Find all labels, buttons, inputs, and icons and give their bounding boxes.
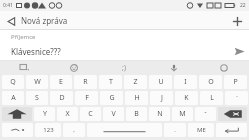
staticText: Nová zpráva [21,15,68,26]
staticText: 123 [43,126,54,134]
button[interactable]: Send [229,44,249,58]
staticText: I [184,77,187,87]
button[interactable]: C [80,107,101,121]
staticText: D [59,93,65,103]
staticText: A [11,93,16,103]
button[interactable]: circle [199,61,249,74]
staticText: B [134,109,139,119]
button[interactable]: J [150,91,173,105]
button[interactable]: X [57,107,78,121]
button[interactable]: Space [87,123,162,137]
button[interactable]: Shift [2,107,32,121]
button[interactable]: Backspace [218,107,247,121]
staticText: N [157,109,163,119]
staticText: 22 [240,2,246,9]
staticText: ;) [122,63,126,73]
staticText: G [109,93,115,103]
button[interactable]: D [50,91,73,105]
button[interactable]: W [26,75,48,89]
button[interactable]: I [174,75,197,89]
staticText: H [134,93,140,103]
button[interactable]: E [50,75,72,89]
staticText: K [184,93,189,103]
staticText: E [59,77,63,87]
button[interactable]: Enter [216,123,247,137]
staticText: S [35,93,39,103]
button[interactable]: O [199,75,222,89]
button[interactable]: wink [99,61,149,74]
button[interactable]: mic [149,61,199,74]
button[interactable]: V [103,107,124,121]
button[interactable]: S [26,91,48,105]
staticText: Q [10,77,16,87]
button[interactable]: emoji [49,61,99,74]
staticText: ˇ [204,110,207,118]
button[interactable]: ME [188,123,214,137]
button[interactable]: R [74,75,97,89]
button[interactable]: N [149,107,170,121]
staticText: . [174,126,176,134]
button[interactable]: 123 [35,123,61,137]
staticText: W [34,77,41,87]
button[interactable]: Y [34,107,55,121]
staticText: T [109,77,113,87]
button[interactable]: A [2,91,24,105]
button[interactable]: K [175,91,198,105]
staticText: R [83,77,88,87]
staticText: Y [43,109,47,119]
button[interactable]: B [126,107,147,121]
button[interactable]: ´ [225,91,248,105]
staticText: Z [133,77,138,87]
button[interactable]: ˇ [195,107,216,121]
staticText: C [88,109,93,119]
staticText: L [210,93,214,103]
staticText: Klávesnice??? [11,46,229,57]
staticText: , [73,126,75,134]
button[interactable]: , [63,123,85,137]
staticText: O [208,77,214,87]
staticText: 0:41 [3,2,13,9]
staticText: M [179,109,186,119]
staticText: U [158,77,164,87]
button[interactable]: P [224,75,247,89]
staticText: ´ [236,94,238,102]
staticText: ME [197,126,206,134]
button[interactable]: F [75,91,98,105]
staticText: X [65,109,70,119]
button[interactable]: kbd [0,61,49,74]
button[interactable]: U [149,75,172,89]
staticText: Příjemce [11,33,36,41]
button[interactable]: H [125,91,148,105]
staticText: V [111,109,116,119]
button[interactable]: Back [4,14,18,28]
button[interactable]: Q [2,75,24,89]
button[interactable]: G [100,91,123,105]
button[interactable]: Add recipient [229,13,245,29]
button[interactable]: Emoji [2,123,33,137]
button[interactable]: M [172,107,193,121]
button[interactable]: T [99,75,122,89]
staticText: F [85,93,89,103]
staticText: J [161,93,163,103]
button[interactable]: Z [124,75,147,89]
staticText: P [233,77,238,87]
button[interactable]: L [200,91,223,105]
